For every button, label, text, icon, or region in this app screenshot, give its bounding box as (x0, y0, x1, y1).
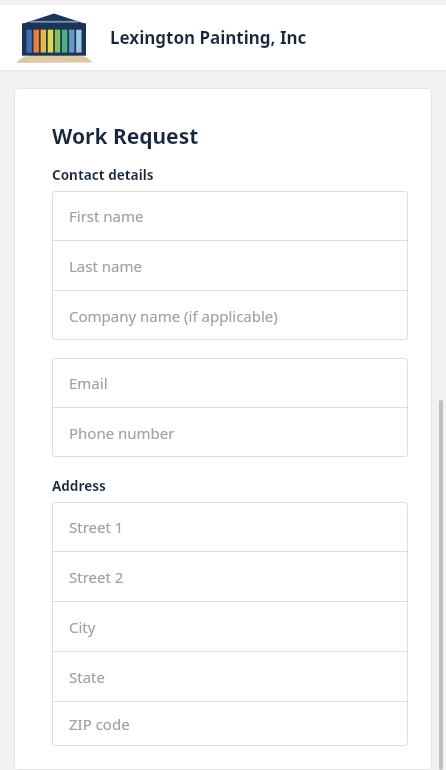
button[interactable]: City (52, 602, 408, 651)
staticText: Last name (69, 256, 142, 276)
other: Lexington Painting logo (14, 12, 94, 64)
staticText: Street 1 (69, 517, 124, 537)
button[interactable]: First name (52, 191, 408, 240)
staticText: Address (52, 477, 106, 495)
button[interactable]: Email (52, 358, 408, 407)
button[interactable]: State (52, 652, 408, 701)
staticText: City (69, 617, 96, 637)
button[interactable]: ZIP code (52, 702, 408, 746)
staticText: Company name (if applicable) (69, 306, 278, 326)
button[interactable]: Street 1 (52, 502, 408, 551)
staticText: Email (69, 373, 108, 393)
staticText: State (69, 667, 105, 687)
staticText: Street 2 (69, 567, 124, 587)
button[interactable]: Street 2 (52, 552, 408, 601)
button[interactable]: Lexington Painting logo (0, 5, 446, 70)
button[interactable]: Last name (52, 241, 408, 290)
button[interactable]: Company name (if applicable) (52, 291, 408, 340)
staticText: ZIP code (69, 714, 130, 734)
staticText: Contact details (52, 166, 154, 184)
staticText: Lexington Painting, Inc (110, 26, 307, 49)
staticText: Phone number (69, 423, 175, 443)
staticText: Work Request (52, 122, 199, 151)
button[interactable]: Phone number (52, 408, 408, 457)
staticText: First name (69, 206, 144, 226)
